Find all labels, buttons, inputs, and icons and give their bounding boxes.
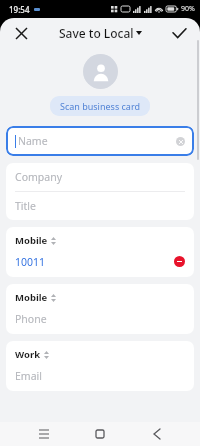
button[interactable]: Title — [6, 192, 194, 220]
staticText: Title — [15, 199, 36, 213]
button[interactable]: Mobile — [15, 291, 56, 304]
button[interactable]: Close — [8, 20, 34, 46]
staticText: Mobile — [15, 291, 48, 304]
button[interactable]: Save to Local — [55, 23, 146, 43]
staticText: 90% — [181, 4, 195, 14]
button[interactable]: Email — [15, 367, 185, 384]
button[interactable]: Recents — [31, 422, 57, 446]
button[interactable]: Clear — [176, 137, 185, 146]
button[interactable]: Scan business card — [50, 96, 150, 116]
staticText: 10011 — [15, 255, 174, 269]
staticText: Email — [15, 369, 185, 383]
button[interactable]: Back — [144, 422, 170, 446]
button[interactable]: Name — [6, 126, 194, 156]
staticText: Mobile — [15, 234, 48, 247]
staticText: Phone — [15, 312, 185, 326]
button[interactable]: Change photo — [83, 54, 118, 89]
staticText: Work — [15, 348, 41, 361]
staticText: 19:54 — [9, 4, 30, 15]
staticText: Company — [15, 170, 62, 184]
button[interactable]: Home — [87, 422, 113, 446]
button[interactable]: Mobile — [15, 234, 56, 247]
staticText: Save to Local — [59, 25, 134, 41]
button[interactable]: 10011 — [15, 253, 185, 270]
button[interactable]: Work — [15, 348, 49, 361]
button[interactable]: Remove — [174, 256, 185, 267]
button[interactable]: Company — [6, 163, 194, 191]
staticText: Scan business card — [60, 100, 140, 112]
button[interactable]: Phone — [15, 310, 185, 327]
button[interactable]: Save — [166, 20, 192, 46]
staticText: Name — [18, 134, 48, 148]
